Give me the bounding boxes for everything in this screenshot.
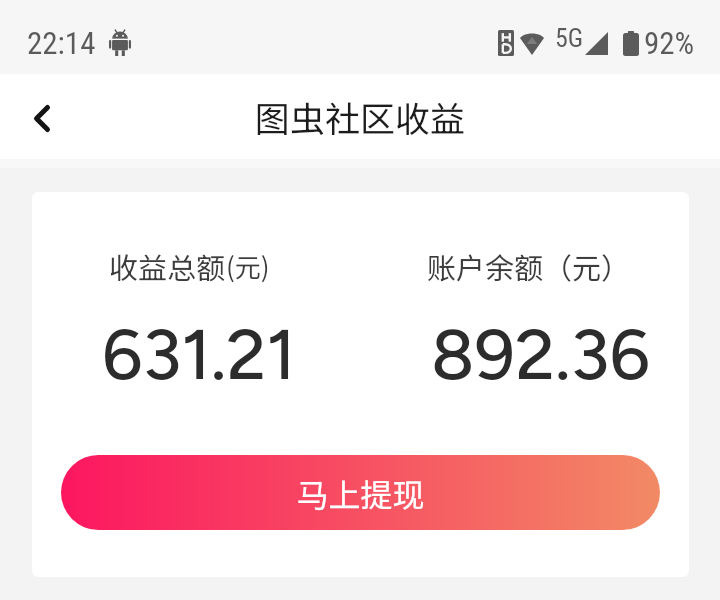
staticText: 5G xyxy=(555,23,584,53)
staticText: 631.21 xyxy=(102,312,296,397)
staticText: 账户余额（元） xyxy=(427,245,631,287)
staticText: 收益总额 xyxy=(109,245,226,287)
staticText: (元) xyxy=(226,247,270,285)
staticText: 892.36 xyxy=(431,312,650,397)
button[interactable]: Back xyxy=(0,74,84,159)
staticText: 92% xyxy=(644,25,695,61)
staticText: 22:14 xyxy=(27,25,96,61)
staticText: 马上提现 xyxy=(296,470,425,516)
staticText: 图虫社区收益 xyxy=(255,91,466,142)
button[interactable]: 马上提现 xyxy=(61,455,660,530)
